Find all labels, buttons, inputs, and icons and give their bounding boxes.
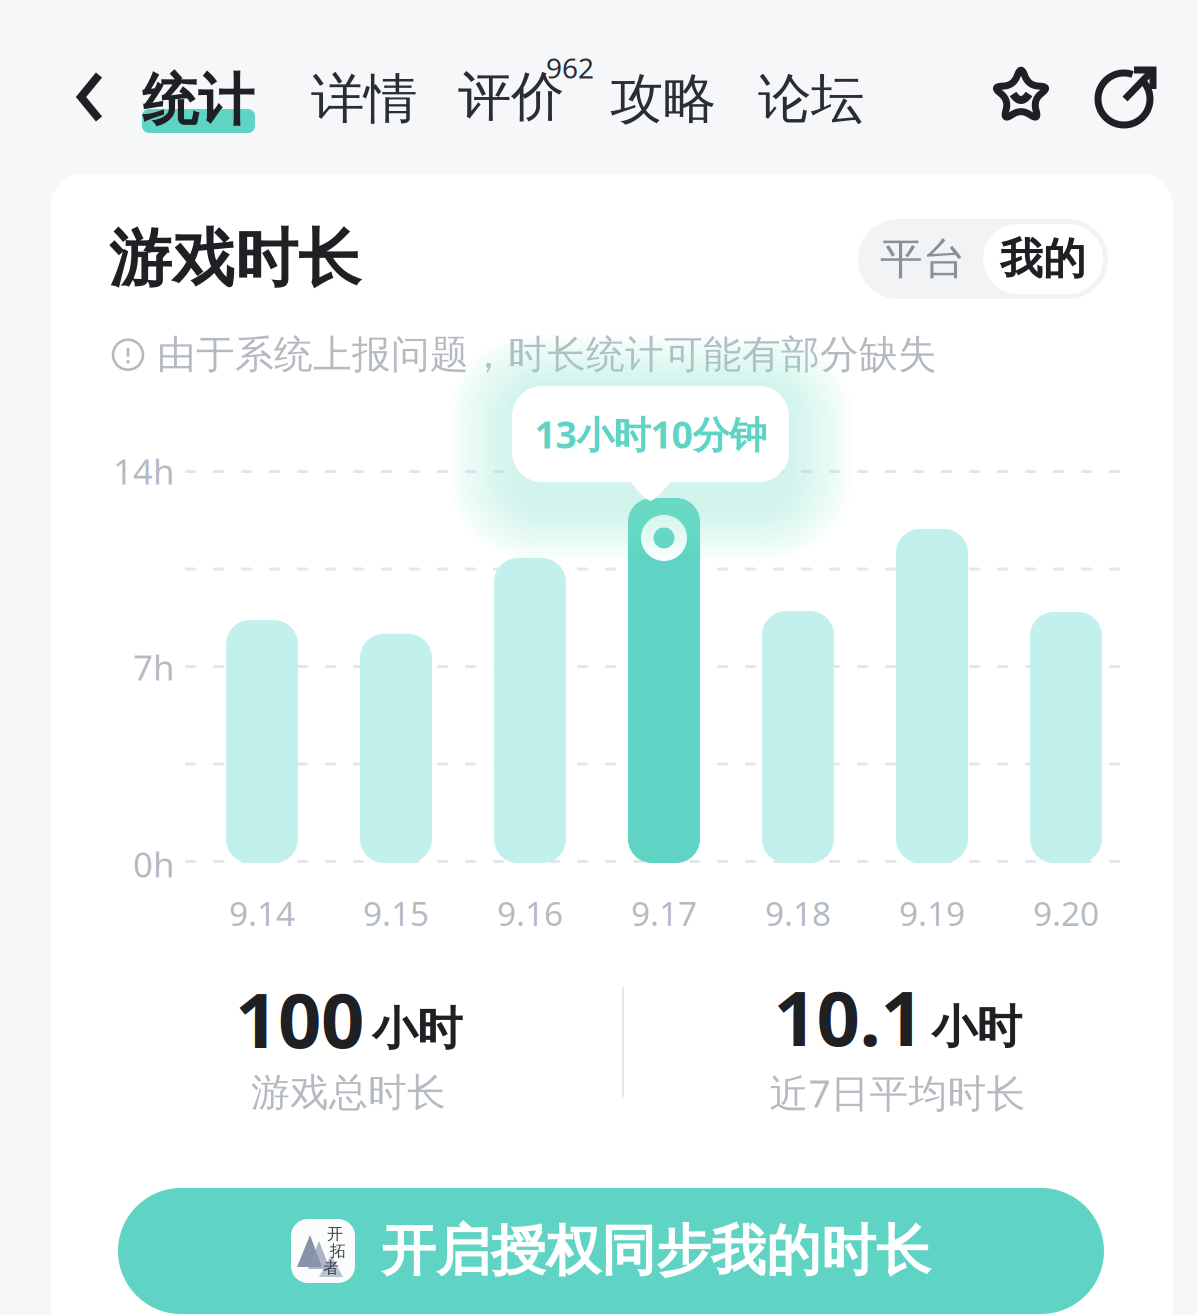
staticText: 者	[323, 1258, 339, 1278]
staticText: 我的	[1000, 233, 1086, 285]
staticText: 9.18	[765, 891, 831, 935]
staticText: 论坛	[758, 66, 864, 132]
staticText: 拓	[330, 1241, 346, 1261]
button[interactable]: 攻略	[610, 58, 704, 140]
staticText: 攻略	[610, 66, 716, 132]
button[interactable]: Back	[58, 60, 122, 134]
staticText: 评价	[458, 64, 564, 129]
staticText: 小时	[931, 999, 1021, 1055]
staticText: 9.19	[899, 891, 965, 935]
staticText: 小时	[372, 1001, 462, 1057]
staticText: 游戏总时长	[251, 1069, 446, 1116]
button[interactable]: 论坛	[758, 58, 852, 140]
staticText: 9.17	[631, 891, 697, 935]
staticText: 0h	[133, 841, 174, 887]
button[interactable]: 开	[118, 1188, 1104, 1314]
button[interactable]: Share	[1092, 57, 1164, 135]
staticText: 开	[327, 1224, 343, 1244]
staticText: 开启授权同步我的时长	[381, 1217, 931, 1284]
staticText: 10.1	[773, 966, 923, 1067]
staticText: 7h	[133, 644, 174, 690]
button[interactable]: 详情	[311, 58, 405, 140]
staticText: 9.14	[229, 891, 295, 935]
staticText: 平台	[880, 233, 966, 285]
button[interactable]: 平台	[863, 224, 983, 294]
staticText: 统计	[142, 66, 254, 135]
staticText: 9.16	[497, 891, 563, 935]
staticText: 9.15	[363, 891, 429, 935]
staticText: 100	[235, 968, 364, 1069]
staticText: 9.20	[1033, 891, 1099, 935]
button[interactable]: 统计	[142, 52, 255, 134]
staticText: 14h	[113, 448, 174, 494]
staticText: 13小时10分钟	[534, 409, 766, 459]
staticText: 游戏时长	[109, 220, 361, 297]
button[interactable]: Favourite	[985, 58, 1057, 134]
button[interactable]: 评价	[458, 52, 593, 134]
staticText: 962	[546, 49, 594, 86]
staticText: 由于系统上报问题，时长统计可能有部分缺失	[157, 331, 937, 378]
staticText: 详情	[311, 66, 417, 132]
staticText: 近7日平均时长	[769, 1067, 1025, 1118]
button[interactable]: 我的	[983, 224, 1103, 294]
